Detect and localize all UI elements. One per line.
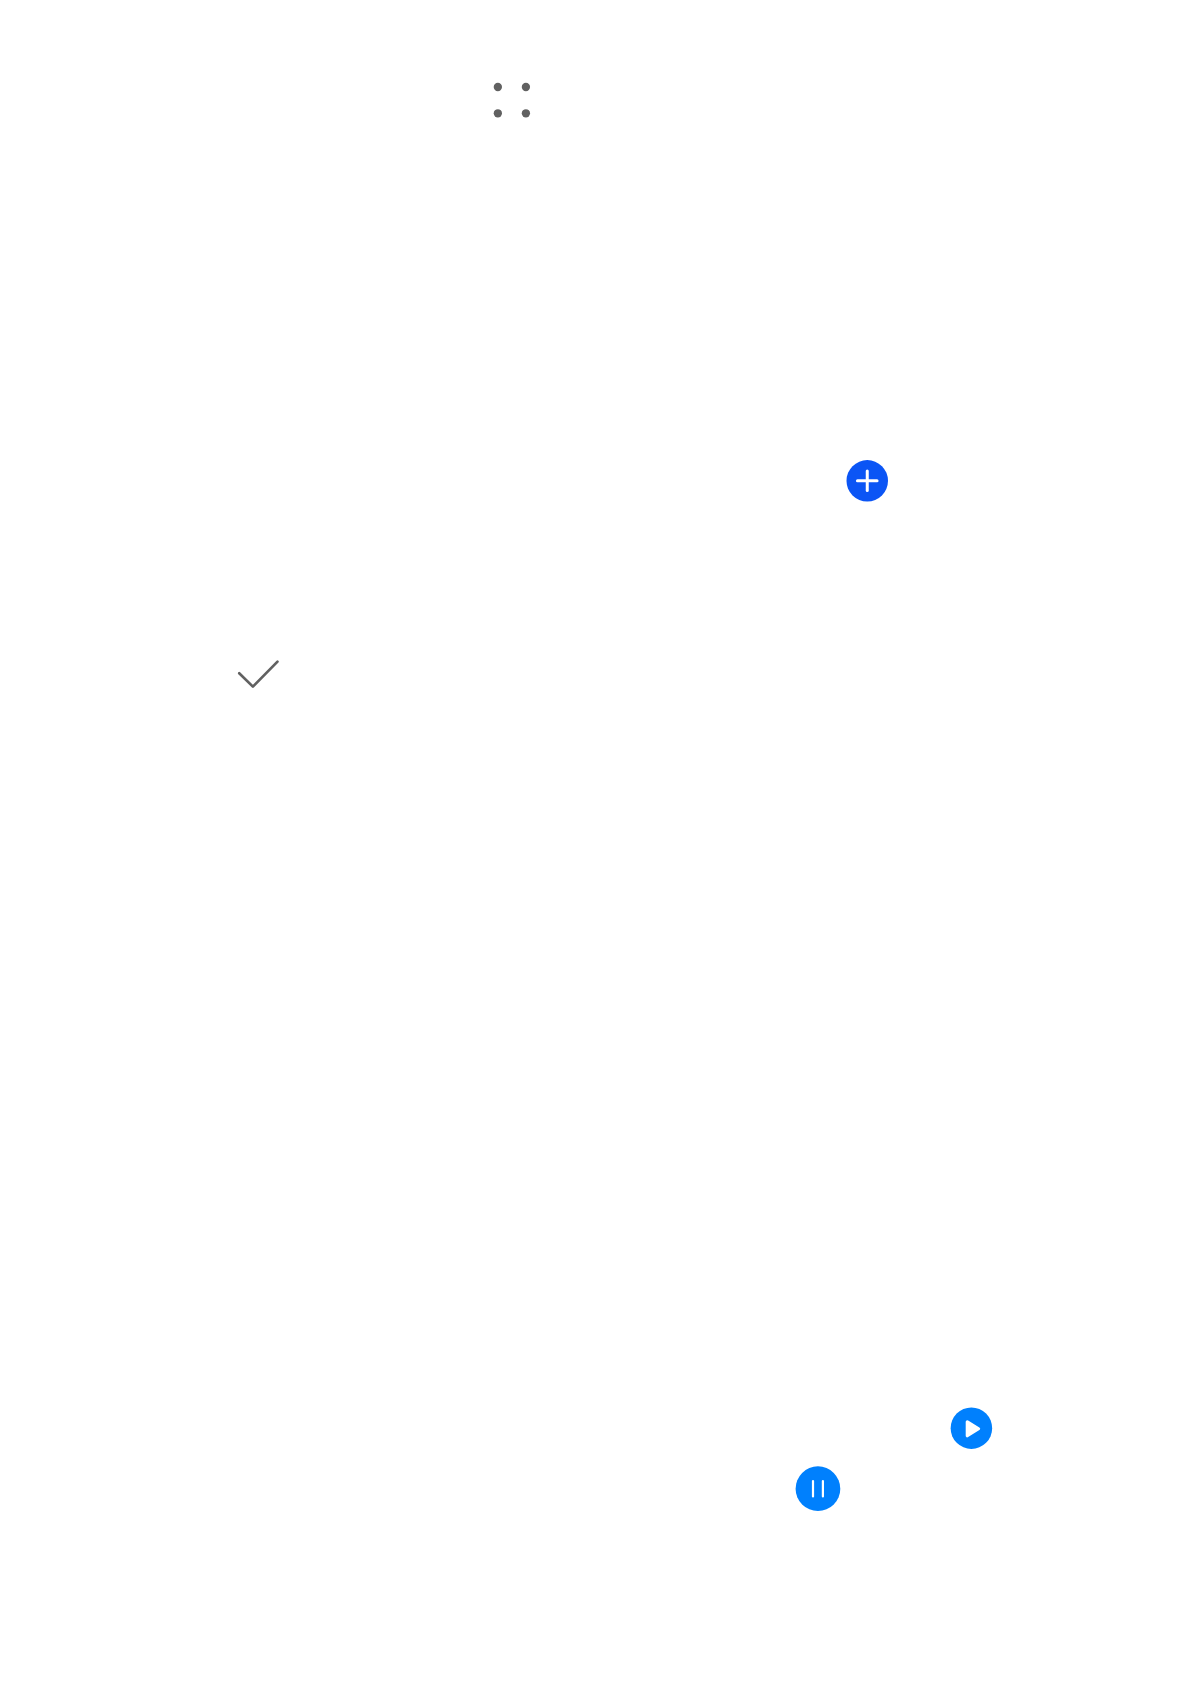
- button[interactable]: Done: [232, 652, 284, 694]
- button[interactable]: Play: [950, 1407, 992, 1449]
- button[interactable]: Pause: [795, 1466, 840, 1511]
- button[interactable]: Add: [846, 460, 888, 502]
- button[interactable]: Apps: [487, 76, 535, 124]
